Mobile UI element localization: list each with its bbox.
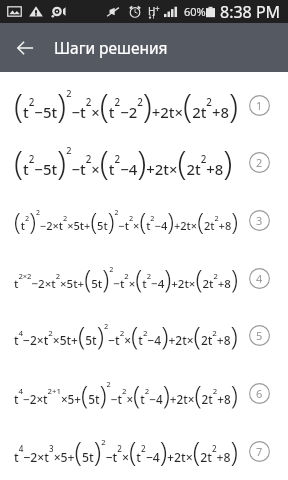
- button[interactable]: t4−2×t3×5+(5t)2−t2×(t2−4)+2t×(2t2+8): [0, 423, 288, 479]
- staticText: 3: [256, 213, 263, 228]
- staticText: t4−2×t3×5+(5t)2−t2×(t2−4)+2t×(2t2+8): [14, 433, 238, 470]
- staticText: t4−2×t2+1×5+(5t)2−t2×(t2−4)+2t×(2t2+8): [14, 376, 238, 411]
- staticText: 6: [256, 386, 263, 401]
- staticText: 60%: [184, 4, 206, 19]
- button[interactable]: (t2)2−2×t2×5t+(5t)2−t2×(t2−4)+2t×(2t2+8): [0, 192, 288, 248]
- staticText: +: [155, 3, 160, 14]
- staticText: 1: [256, 98, 263, 113]
- button[interactable]: Back: [0, 23, 50, 72]
- button[interactable]: (t2−5t)2−t2×(t2−4)+2t×(2t2+8): [0, 134, 288, 190]
- staticText: 2: [256, 155, 263, 170]
- button[interactable]: (t2−5t)2−t2×(t2−22)+2t×(2t2+8): [0, 77, 288, 133]
- staticText: 8:38 PM: [220, 1, 281, 23]
- staticText: 5: [256, 328, 263, 343]
- staticText: t4−2×t2×5t+(5t)2−t2×(t2−4)+2t×(2t2+8): [14, 317, 238, 353]
- staticText: t2×2−2×t2×5t+(5t)2−t2×(t2−4)+2t×(2t2+8): [14, 261, 238, 296]
- staticText: Шаги решения: [54, 37, 168, 58]
- staticText: (t2−5t)2−t2×(t2−4)+2t×(2t2+8): [14, 140, 233, 185]
- button[interactable]: t2×2−2×t2×5t+(5t)2−t2×(t2−4)+2t×(2t2+8): [0, 250, 288, 306]
- staticText: H: [148, 4, 156, 18]
- button[interactable]: t4−2×t2+1×5+(5t)2−t2×(t2−4)+2t×(2t2+8): [0, 365, 288, 421]
- staticText: 4: [256, 271, 263, 286]
- staticText: (t2−5t)2−t2×(t2−22)+2t×(2t2+8): [14, 83, 238, 128]
- staticText: 7: [256, 444, 263, 459]
- button[interactable]: t4−2×t2×5t+(5t)2−t2×(t2−4)+2t×(2t2+8): [0, 307, 288, 363]
- staticText: (t2)2−2×t2×5t+(5t)2−t2×(t2−4)+2t×(2t2+8): [14, 204, 238, 237]
